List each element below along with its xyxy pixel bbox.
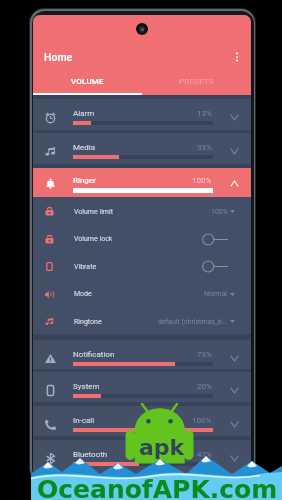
staticText: Home <box>44 51 73 63</box>
staticText: 20% <box>197 382 212 391</box>
button[interactable]: Alarm <box>33 99 251 130</box>
staticText: Mode <box>74 290 92 298</box>
button[interactable]: Collapse <box>228 177 241 190</box>
button[interactable]: VOLUME <box>33 70 142 95</box>
staticText: PRESETS <box>179 77 215 86</box>
staticText: Ringtone <box>74 318 102 326</box>
button[interactable]: Expand <box>228 145 241 158</box>
staticText: Normal <box>204 290 228 298</box>
staticText: 100% <box>192 416 212 425</box>
staticText: 100% <box>211 208 228 216</box>
button[interactable]: Bluetooth <box>33 440 251 470</box>
staticText: 73% <box>197 350 212 359</box>
button[interactable]: Volume limit <box>33 197 251 224</box>
staticText: apk <box>139 435 185 461</box>
staticText: 100% <box>192 176 212 185</box>
button[interactable]: Expand <box>228 384 241 397</box>
staticText: In-call <box>73 416 95 425</box>
button[interactable]: Expand <box>228 352 241 365</box>
button[interactable]: Expand <box>228 452 241 465</box>
staticText: 13% <box>197 109 212 118</box>
button[interactable]: Media <box>33 133 251 164</box>
staticText: Alarm <box>73 109 95 118</box>
button[interactable]: Ringer <box>33 168 251 197</box>
button[interactable]: More options <box>225 44 249 70</box>
staticText: 47% <box>197 450 212 459</box>
button[interactable]: PRESETS <box>142 70 251 95</box>
button[interactable]: Volume lock <box>33 224 251 252</box>
staticText: Volume limit <box>74 208 113 216</box>
button[interactable]: Ringtone <box>33 307 251 334</box>
button[interactable]: Vibrate <box>33 252 251 279</box>
staticText: Notification <box>73 350 115 359</box>
button[interactable]: Expand <box>228 418 241 431</box>
staticText: System <box>73 382 100 391</box>
staticText: Bluetooth <box>73 450 108 459</box>
staticText: Volume lock <box>74 235 113 243</box>
staticText: default (christmas_b... <box>158 318 228 326</box>
staticText: VOLUME <box>71 77 104 86</box>
staticText: OceanofAPK.com <box>37 475 278 500</box>
button[interactable]: In-call <box>33 406 251 436</box>
button[interactable]: Mode <box>33 279 251 307</box>
staticText: Media <box>73 143 96 152</box>
button[interactable]: Notification <box>33 340 251 369</box>
button[interactable]: Expand <box>228 111 241 124</box>
staticText: Ringer <box>73 176 96 185</box>
staticText: 33% <box>197 143 212 152</box>
button[interactable]: System <box>33 372 251 402</box>
staticText: Vibrate <box>74 263 97 271</box>
